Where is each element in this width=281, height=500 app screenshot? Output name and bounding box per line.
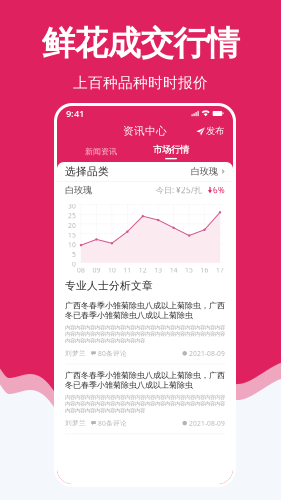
staticText: 新闻资讯: [85, 147, 117, 156]
staticText: 白玫瑰: [191, 166, 218, 177]
staticText: 08: [77, 266, 85, 274]
staticText: 选择品类: [65, 165, 109, 178]
staticText: 30: [68, 202, 76, 210]
staticText: 11: [123, 266, 131, 274]
staticText: 内容内容内容内容内容内容内容内容内容内容内容内容内容内容内容内容内容内容内容内容…: [65, 394, 225, 414]
staticText: 上百种品种时时报价: [73, 74, 208, 92]
button[interactable]: 广西冬春季小雏菊除虫八成以上菊除虫，广西冬已春季小雏菊除虫八成以上菊除虫: [57, 295, 233, 364]
staticText: 10: [108, 266, 116, 274]
staticText: 5: [72, 250, 76, 259]
staticText: 刘梦兰: [65, 419, 86, 427]
staticText: 白玫瑰: [65, 184, 92, 196]
staticText: 20: [68, 221, 76, 230]
staticText: 6%: [213, 185, 225, 195]
staticText: 14: [170, 266, 178, 274]
button[interactable]: 广西冬春季小雏菊除虫八成以上菊除虫，广西冬已春季小雏菊除虫八成以上菊除虫: [57, 364, 233, 434]
staticText: 80条评论: [98, 349, 127, 358]
staticText: 10: [68, 240, 76, 249]
staticText: 2021-08-09: [189, 349, 225, 358]
staticText: 2021-08-09: [189, 419, 225, 428]
staticText: 80条评论: [98, 419, 127, 428]
button[interactable]: 新闻资讯: [77, 141, 125, 162]
staticText: 25: [68, 211, 76, 220]
staticText: 9:41: [66, 107, 84, 120]
staticText: 专业人士分析文章: [65, 279, 153, 292]
staticText: 今日: ¥25/扎: [156, 185, 202, 195]
staticText: 12: [139, 266, 147, 274]
staticText: 广西冬春季小雏菊除虫八成以上菊除虫，广西冬已春季小雏菊除虫八成以上菊除虫: [65, 301, 225, 320]
staticText: 13: [154, 266, 162, 274]
staticText: 鲜花成交行情: [41, 23, 239, 64]
button[interactable]: 市场行情: [147, 141, 195, 162]
button[interactable]: 发布: [194, 123, 226, 139]
staticText: 资讯中心: [123, 124, 167, 137]
staticText: 刘梦兰: [65, 349, 86, 357]
staticText: 09: [92, 266, 100, 274]
staticText: 15: [185, 266, 193, 274]
button[interactable]: 选择品类: [57, 162, 233, 181]
staticText: 15: [68, 231, 76, 239]
staticText: 市场行情: [153, 144, 189, 155]
staticText: 0: [72, 260, 76, 268]
staticText: 广西冬春季小雏菊除虫八成以上菊除虫，广西冬已春季小雏菊除虫八成以上菊除虫: [65, 370, 225, 390]
staticText: 内容内容内容内容内容内容内容内容内容内容内容内容内容内容内容内容内容内容内容内容…: [65, 324, 225, 344]
staticText: 17: [216, 266, 224, 274]
staticText: 16: [201, 266, 209, 274]
staticText: 发布: [206, 125, 224, 137]
